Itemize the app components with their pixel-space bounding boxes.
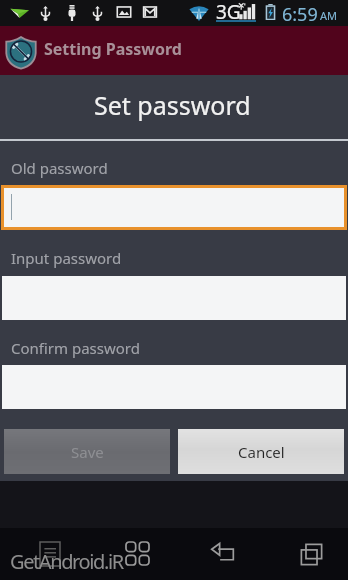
staticText: Old password: [11, 158, 108, 178]
button[interactable]: Cancel: [178, 429, 344, 474]
button[interactable]: Back: [211, 542, 235, 566]
staticText: Save: [71, 442, 104, 462]
staticText: 3G: [216, 0, 241, 25]
staticText: Input password: [11, 248, 122, 268]
staticText: AM: [320, 8, 338, 23]
button[interactable]: [4, 188, 344, 227]
button[interactable]: Menu: [125, 541, 149, 565]
staticText: Cancel: [238, 442, 285, 462]
staticText: 6:59: [282, 2, 318, 27]
button[interactable]: Save: [4, 429, 170, 474]
staticText: GetAndroid.iR: [10, 548, 123, 575]
staticText: Setting Password: [44, 38, 182, 60]
button[interactable]: Recent apps: [299, 542, 323, 566]
staticText: Set password: [94, 88, 251, 122]
staticText: Confirm password: [11, 338, 140, 358]
